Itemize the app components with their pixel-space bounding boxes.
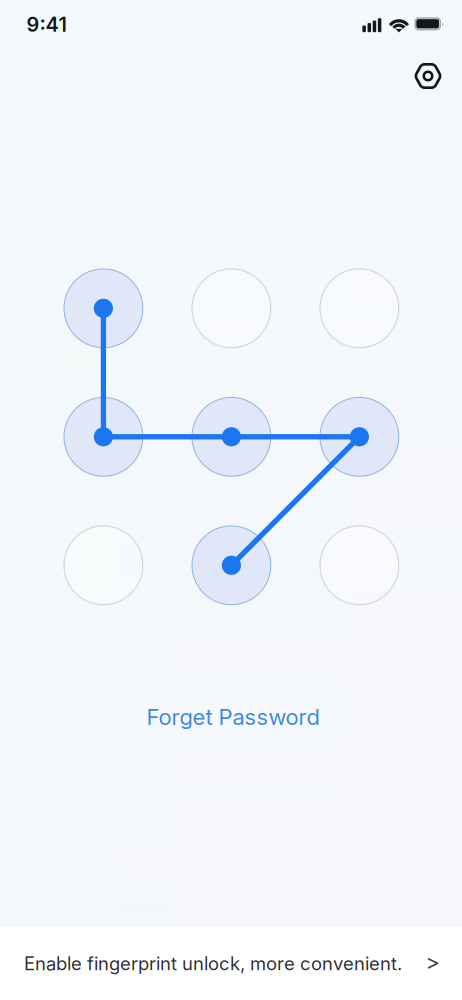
button[interactable]: Settings — [412, 48, 462, 98]
staticText: Enable fingerprint unlock, more convenie… — [24, 952, 402, 975]
staticText: 9:41 — [26, 12, 66, 36]
button[interactable]: Forget Password — [132, 696, 333, 738]
staticText: Forget Password — [146, 704, 319, 730]
button[interactable]: Enable fingerprint unlock, more convenie… — [0, 927, 462, 1000]
